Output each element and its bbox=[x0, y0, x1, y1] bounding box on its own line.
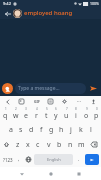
staticText: employed hoang bbox=[24, 9, 73, 17]
button[interactable]: Emoji bbox=[14, 154, 23, 165]
button[interactable]: 1 bbox=[0, 106, 11, 122]
button[interactable]: Profile photo bbox=[13, 9, 22, 18]
button[interactable]: b bbox=[54, 137, 65, 152]
staticText: English bbox=[47, 157, 61, 162]
staticText: m bbox=[78, 140, 85, 150]
button[interactable]: Clipboard bbox=[45, 97, 56, 106]
button[interactable]: 0 bbox=[91, 106, 101, 122]
staticText: z bbox=[16, 140, 20, 150]
button[interactable]: More options bbox=[74, 97, 85, 106]
staticText: r bbox=[35, 111, 38, 121]
staticText: s bbox=[19, 125, 23, 135]
button[interactable]: Type a message... bbox=[15, 83, 86, 94]
button[interactable]: 2 bbox=[11, 106, 21, 122]
button[interactable]: m bbox=[76, 137, 87, 152]
button[interactable]: l bbox=[86, 122, 96, 137]
staticText: w bbox=[13, 111, 19, 121]
button[interactable]: Recent apps bbox=[72, 167, 86, 180]
button[interactable]: Backspace bbox=[87, 137, 101, 152]
staticText: 9:42 bbox=[3, 1, 11, 6]
staticText: 7 bbox=[66, 107, 68, 111]
button[interactable]: Settings bbox=[59, 97, 70, 106]
button[interactable]: f bbox=[36, 122, 46, 137]
staticText: p bbox=[94, 111, 99, 121]
staticText: f bbox=[40, 125, 43, 135]
button[interactable]: Add attachment bbox=[2, 83, 13, 94]
button[interactable]: Shift bbox=[0, 137, 13, 152]
button[interactable]: Home bbox=[44, 167, 58, 180]
staticText: 3 bbox=[25, 107, 27, 111]
staticText: , bbox=[18, 156, 20, 163]
button[interactable]: . bbox=[74, 154, 84, 165]
staticText: ··· bbox=[77, 98, 82, 105]
staticText: e bbox=[24, 111, 28, 121]
staticText: q bbox=[3, 111, 8, 121]
staticText: x bbox=[26, 140, 30, 150]
staticText: 2 bbox=[15, 107, 17, 111]
staticText: t bbox=[45, 111, 48, 121]
button[interactable]: g bbox=[46, 122, 56, 137]
staticText: 0 bbox=[96, 107, 98, 111]
button[interactable]: 9 bbox=[81, 106, 91, 122]
button[interactable]: x bbox=[23, 137, 33, 152]
staticText: 4 bbox=[36, 107, 38, 111]
button[interactable]: Send bbox=[88, 83, 99, 94]
staticText: ?123 bbox=[3, 157, 13, 163]
staticText: h bbox=[59, 125, 64, 135]
button[interactable]: 6 bbox=[51, 106, 61, 122]
button[interactable]: v bbox=[43, 137, 54, 152]
button[interactable]: 3 bbox=[21, 106, 31, 122]
button[interactable]: c bbox=[33, 137, 43, 152]
staticText: j bbox=[70, 125, 72, 135]
staticText: . bbox=[78, 156, 80, 163]
button[interactable]: Voice input bbox=[88, 97, 99, 106]
staticText: g bbox=[49, 125, 54, 135]
button[interactable]: 7 bbox=[61, 106, 71, 122]
staticText: a bbox=[9, 125, 13, 135]
button[interactable]: employed hoang bbox=[24, 9, 98, 17]
staticText: 9 bbox=[86, 107, 88, 111]
button[interactable]: Back bbox=[3, 9, 12, 18]
button[interactable]: Expand bbox=[2, 97, 13, 106]
staticText: c bbox=[36, 140, 40, 150]
staticText: n bbox=[68, 140, 73, 150]
button[interactable]: n bbox=[65, 137, 76, 152]
button[interactable]: d bbox=[26, 122, 36, 137]
staticText: u bbox=[64, 111, 69, 121]
staticText: v bbox=[47, 140, 51, 150]
button[interactable]: 4 bbox=[31, 106, 41, 122]
staticText: GIF bbox=[34, 99, 40, 104]
button[interactable]: English bbox=[34, 154, 73, 165]
button[interactable]: 5 bbox=[41, 106, 51, 122]
button[interactable]: ?123 bbox=[1, 154, 14, 165]
staticText: b bbox=[57, 140, 62, 150]
staticText: o bbox=[84, 111, 89, 121]
staticText: 8 bbox=[75, 107, 77, 111]
button[interactable]: Send bbox=[85, 154, 99, 165]
staticText: 1 bbox=[5, 107, 7, 111]
staticText: y bbox=[54, 111, 58, 121]
button[interactable]: Change language bbox=[23, 154, 33, 165]
staticText: 5 bbox=[46, 107, 48, 111]
button[interactable]: Back bbox=[15, 167, 29, 180]
staticText: i bbox=[75, 111, 77, 121]
button[interactable]: h bbox=[56, 122, 66, 137]
staticText: 6 bbox=[55, 107, 57, 111]
staticText: Type a message... bbox=[18, 85, 60, 92]
button[interactable]: z bbox=[13, 137, 23, 152]
staticText: 100% bbox=[90, 1, 99, 6]
button[interactable]: 8 bbox=[71, 106, 81, 122]
staticText: k bbox=[79, 125, 83, 135]
staticText: d bbox=[29, 125, 34, 135]
button[interactable]: Stickers bbox=[16, 97, 27, 106]
button[interactable]: a bbox=[6, 122, 16, 137]
staticText: l bbox=[90, 125, 92, 135]
button[interactable]: k bbox=[76, 122, 86, 137]
button[interactable]: s bbox=[16, 122, 26, 137]
button[interactable]: GIF bbox=[31, 97, 42, 106]
button[interactable]: j bbox=[66, 122, 76, 137]
